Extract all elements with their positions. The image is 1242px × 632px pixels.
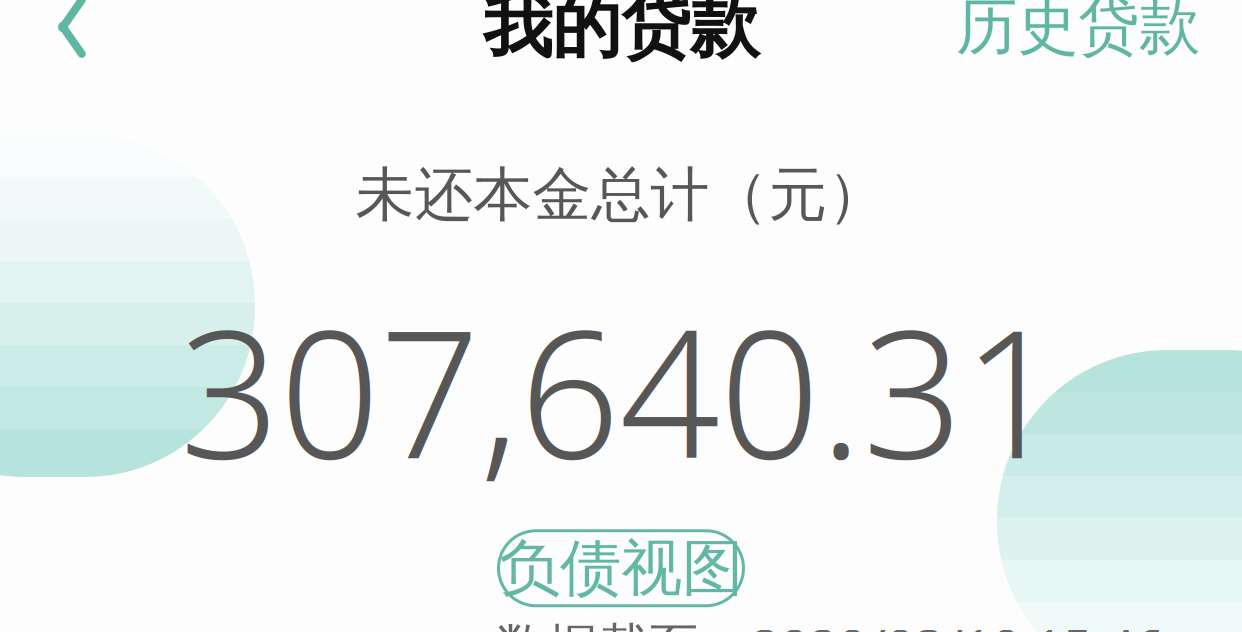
staticText: 未还本金总计（元） xyxy=(355,159,886,231)
button[interactable]: 历史贷款 xyxy=(938,0,1218,75)
staticText: 数据截至： xyxy=(496,616,751,632)
button[interactable]: 返回 xyxy=(24,0,120,75)
staticText: 历史贷款 xyxy=(956,0,1200,65)
staticText: 负债视图 xyxy=(499,531,743,606)
staticText: 307,640.31 xyxy=(179,273,1062,507)
staticText: 2020/03/10 15:46 xyxy=(751,614,1164,632)
button[interactable]: 负债视图 xyxy=(498,531,743,606)
staticText: 我的贷款 xyxy=(483,0,759,70)
